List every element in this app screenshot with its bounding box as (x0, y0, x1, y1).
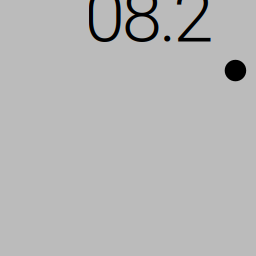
button[interactable]: Record (225, 60, 246, 81)
staticText: 08.2 (85, 0, 213, 59)
